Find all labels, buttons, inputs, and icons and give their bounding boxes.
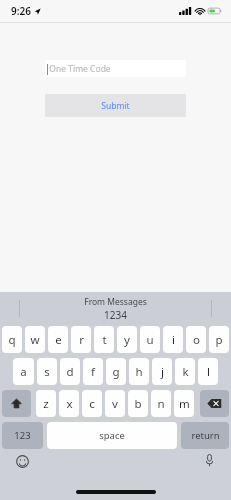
button[interactable]: z [36, 390, 56, 417]
button[interactable]: w [25, 326, 45, 353]
staticText: h [135, 364, 143, 380]
staticText: y [124, 332, 130, 348]
staticText: m [179, 396, 190, 412]
button[interactable]: t [94, 326, 114, 353]
staticText: b [134, 396, 142, 412]
button[interactable]: One Time Code [45, 60, 186, 77]
staticText: t [102, 332, 107, 348]
staticText: i [172, 332, 175, 348]
staticText: x [66, 396, 73, 412]
staticText: e [55, 332, 62, 348]
button[interactable]: r [71, 326, 91, 353]
button[interactable]: x [59, 390, 79, 417]
button[interactable]: k [175, 358, 195, 385]
button[interactable]: s [37, 358, 57, 385]
button[interactable]: c [82, 390, 102, 417]
button[interactable]: n [151, 390, 171, 417]
staticText: return [191, 429, 220, 442]
staticText: s [44, 364, 50, 380]
button[interactable]: m [174, 390, 194, 417]
staticText: g [112, 364, 120, 380]
button[interactable]: b [128, 390, 148, 417]
staticText: v [112, 396, 118, 412]
staticText: 9:26 [11, 4, 31, 18]
staticText: l [207, 364, 210, 380]
button[interactable]: Shift [2, 390, 31, 417]
staticText: From Messages [84, 296, 147, 308]
staticText: f [91, 364, 95, 380]
button[interactable]: Emoji [15, 454, 29, 468]
button[interactable]: Dictation [202, 453, 216, 467]
button[interactable]: j [152, 358, 172, 385]
staticText: p [215, 332, 223, 348]
staticText: 123 [14, 429, 31, 442]
staticText: w [30, 332, 40, 348]
staticText: 1234 [104, 308, 127, 322]
button[interactable]: Backspace [200, 390, 229, 417]
staticText: q [8, 332, 16, 348]
button[interactable]: return [181, 422, 229, 449]
button[interactable]: d [60, 358, 80, 385]
staticText: Submit [101, 100, 130, 112]
staticText: u [146, 332, 154, 348]
staticText: o [193, 332, 200, 348]
button[interactable]: o [186, 326, 206, 353]
button[interactable]: space [47, 422, 177, 449]
staticText: j [161, 364, 164, 380]
button[interactable]: Submit [45, 94, 186, 117]
staticText: k [182, 364, 189, 380]
button[interactable]: y [117, 326, 137, 353]
button[interactable]: 123 [2, 422, 43, 449]
button[interactable]: f [83, 358, 103, 385]
staticText: space [99, 429, 125, 442]
button[interactable]: h [129, 358, 149, 385]
button[interactable]: g [106, 358, 126, 385]
staticText: d [66, 364, 74, 380]
button[interactable]: a [13, 358, 34, 385]
button[interactable]: v [105, 390, 125, 417]
staticText: a [20, 364, 27, 380]
button[interactable]: i [163, 326, 183, 353]
staticText: n [157, 396, 165, 412]
staticText: r [79, 332, 84, 348]
button[interactable]: q [2, 326, 22, 353]
staticText: z [43, 396, 49, 412]
staticText: c [89, 396, 95, 412]
button[interactable]: From Messages [84, 296, 147, 322]
staticText: One Time Code [49, 63, 111, 75]
button[interactable]: l [198, 358, 218, 385]
button[interactable]: e [48, 326, 68, 353]
button[interactable]: u [140, 326, 160, 353]
button[interactable]: p [209, 326, 229, 353]
